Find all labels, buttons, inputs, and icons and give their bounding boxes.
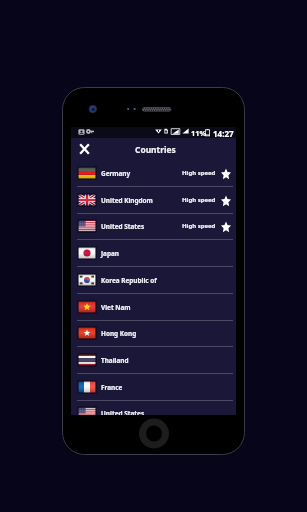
staticText: High speed [182, 169, 216, 177]
button[interactable]: Close [72, 138, 94, 160]
staticText: United States [101, 409, 145, 415]
staticText: Thailand [101, 356, 129, 365]
button[interactable]: United Kingdom [71, 187, 236, 214]
staticText: Japan [101, 249, 119, 258]
staticText: High speed [182, 196, 216, 204]
button[interactable]: Hong Kong [71, 320, 236, 347]
staticText: 14:27 [213, 128, 234, 139]
button[interactable]: United States [71, 400, 236, 415]
button[interactable]: Viet Nam [71, 294, 236, 321]
button[interactable]: United States [71, 213, 236, 240]
staticText: High speed [182, 222, 216, 230]
staticText: Viet Nam [101, 303, 131, 312]
staticText: Germany [101, 169, 131, 178]
button[interactable]: Thailand [71, 347, 236, 374]
button[interactable]: Germany [71, 160, 236, 187]
staticText: United States [101, 222, 145, 231]
staticText: Hong Kong [101, 329, 137, 338]
staticText: Korea Republic of [101, 276, 157, 285]
button[interactable]: France [71, 374, 236, 401]
button[interactable]: Korea Republic of [71, 267, 236, 294]
staticText: France [101, 383, 123, 392]
staticText: 11% [191, 128, 207, 138]
staticText: Countries [135, 144, 176, 155]
staticText: United Kingdom [101, 196, 153, 205]
button[interactable]: Japan [71, 240, 236, 267]
